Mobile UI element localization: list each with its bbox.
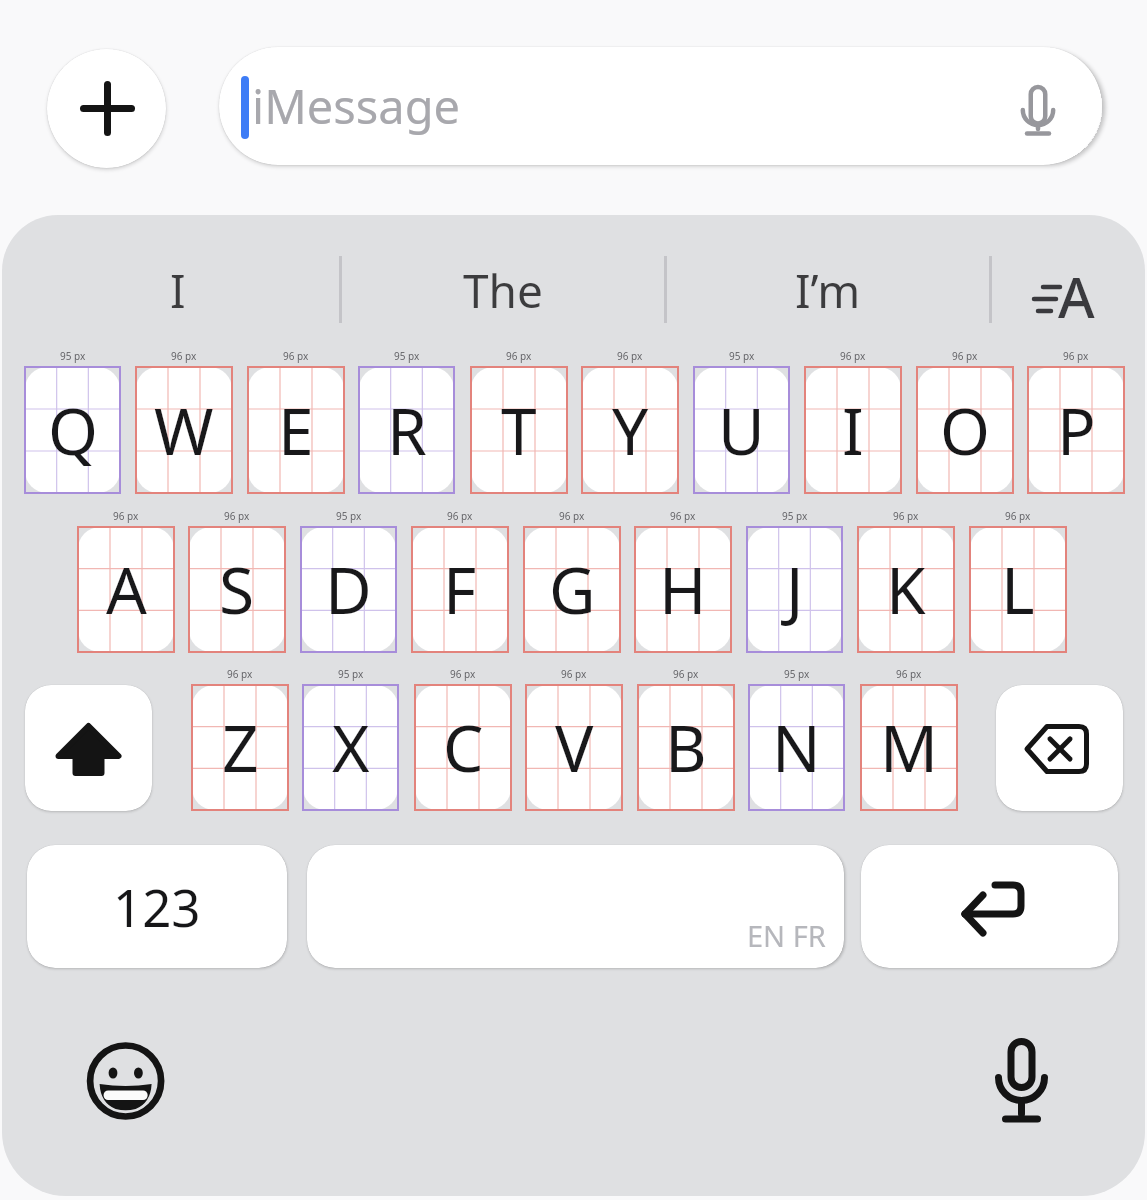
staticText: 96 px	[171, 349, 197, 363]
staticText: N	[772, 704, 821, 791]
staticText: iMessage	[252, 74, 461, 138]
button[interactable]	[78, 1033, 174, 1129]
staticText: G	[549, 546, 596, 633]
staticText: D	[325, 546, 372, 633]
staticText: 123	[113, 872, 201, 941]
button[interactable]: C	[415, 685, 511, 810]
button[interactable]: R	[359, 367, 454, 493]
staticText: U	[718, 387, 765, 474]
button[interactable]	[47, 49, 166, 168]
staticText: 96 px	[113, 509, 139, 523]
staticText: A	[1058, 258, 1095, 328]
staticText: S	[219, 546, 255, 633]
staticText: F	[443, 546, 477, 633]
staticText: 96 px	[673, 667, 699, 681]
button[interactable]: A	[1014, 252, 1128, 328]
staticText: 96 px	[952, 349, 978, 363]
button[interactable]: U	[694, 367, 789, 493]
button[interactable]: I	[805, 367, 901, 493]
button[interactable]: W	[136, 367, 232, 493]
button[interactable]	[25, 685, 152, 811]
button[interactable]: I’m	[668, 254, 988, 326]
button[interactable]: I	[18, 254, 338, 326]
staticText: 95 px	[782, 509, 808, 523]
staticText: 96 px	[559, 509, 585, 523]
staticText: K	[886, 546, 926, 633]
staticText: T	[501, 387, 537, 474]
button[interactable]: K	[858, 527, 954, 652]
button[interactable]: G	[524, 527, 620, 652]
staticText: 96 px	[227, 667, 253, 681]
staticText: Y	[612, 387, 649, 474]
staticText: 96 px	[840, 349, 866, 363]
button[interactable]: D	[301, 527, 396, 652]
staticText: 95 px	[729, 349, 755, 363]
staticText: 95 px	[784, 667, 810, 681]
button[interactable]: S	[189, 527, 285, 652]
button[interactable]: A	[78, 527, 174, 652]
button[interactable]: Z	[192, 685, 288, 810]
button[interactable]: The	[343, 254, 663, 326]
staticText: M	[880, 704, 939, 791]
staticText: 96 px	[896, 667, 922, 681]
staticText: H	[659, 546, 707, 633]
staticText: 95 px	[336, 509, 362, 523]
staticText: 95 px	[60, 349, 86, 363]
staticText: V	[555, 704, 594, 791]
staticText: E	[278, 387, 314, 474]
staticText: I’m	[795, 259, 861, 322]
button[interactable]: H	[635, 527, 731, 652]
staticText: C	[443, 704, 484, 791]
staticText: 95 px	[394, 349, 420, 363]
staticText: 96 px	[617, 349, 643, 363]
staticText: 96 px	[1063, 349, 1089, 363]
button[interactable]	[861, 845, 1118, 968]
staticText: Z	[222, 704, 259, 791]
button[interactable]: 123	[27, 845, 287, 968]
staticText: O	[940, 387, 990, 474]
button[interactable]: L	[970, 527, 1066, 652]
staticText: Q	[48, 387, 98, 474]
staticText: L	[1001, 546, 1035, 633]
button[interactable]: X	[303, 685, 398, 810]
staticText: The	[463, 259, 543, 322]
staticText: 96 px	[670, 509, 696, 523]
button[interactable]: Y	[582, 367, 678, 493]
button[interactable]: B	[638, 685, 734, 810]
button[interactable]: J	[747, 527, 842, 652]
staticText: W	[154, 387, 214, 474]
button[interactable]: T	[471, 367, 567, 493]
button[interactable]: EN FR	[307, 845, 844, 968]
staticText: 96 px	[447, 509, 473, 523]
button[interactable]: P	[1028, 367, 1124, 493]
button[interactable]	[996, 685, 1123, 811]
staticText: B	[665, 704, 707, 791]
button[interactable]: Q	[25, 367, 120, 493]
button[interactable]: V	[526, 685, 622, 810]
staticText: 96 px	[283, 349, 309, 363]
staticText: I	[842, 387, 864, 474]
button[interactable]: iMessage	[219, 47, 1102, 165]
staticText: P	[1057, 387, 1096, 474]
staticText: J	[786, 546, 804, 633]
staticText: 96 px	[893, 509, 919, 523]
staticText: A	[106, 546, 147, 633]
button[interactable]	[965, 1025, 1080, 1140]
button[interactable]: E	[248, 367, 344, 493]
staticText: 96 px	[224, 509, 250, 523]
staticText: 96 px	[506, 349, 532, 363]
button[interactable]: M	[861, 685, 957, 810]
button[interactable]: O	[917, 367, 1013, 493]
staticText: R	[387, 387, 427, 474]
staticText: 95 px	[338, 667, 364, 681]
staticText: EN FR	[747, 916, 826, 955]
staticText: I	[170, 259, 186, 322]
staticText: X	[332, 704, 370, 791]
staticText: 96 px	[561, 667, 587, 681]
button[interactable]: F	[412, 527, 508, 652]
staticText: 96 px	[1005, 509, 1031, 523]
button[interactable]: N	[749, 685, 844, 810]
staticText: 96 px	[450, 667, 476, 681]
